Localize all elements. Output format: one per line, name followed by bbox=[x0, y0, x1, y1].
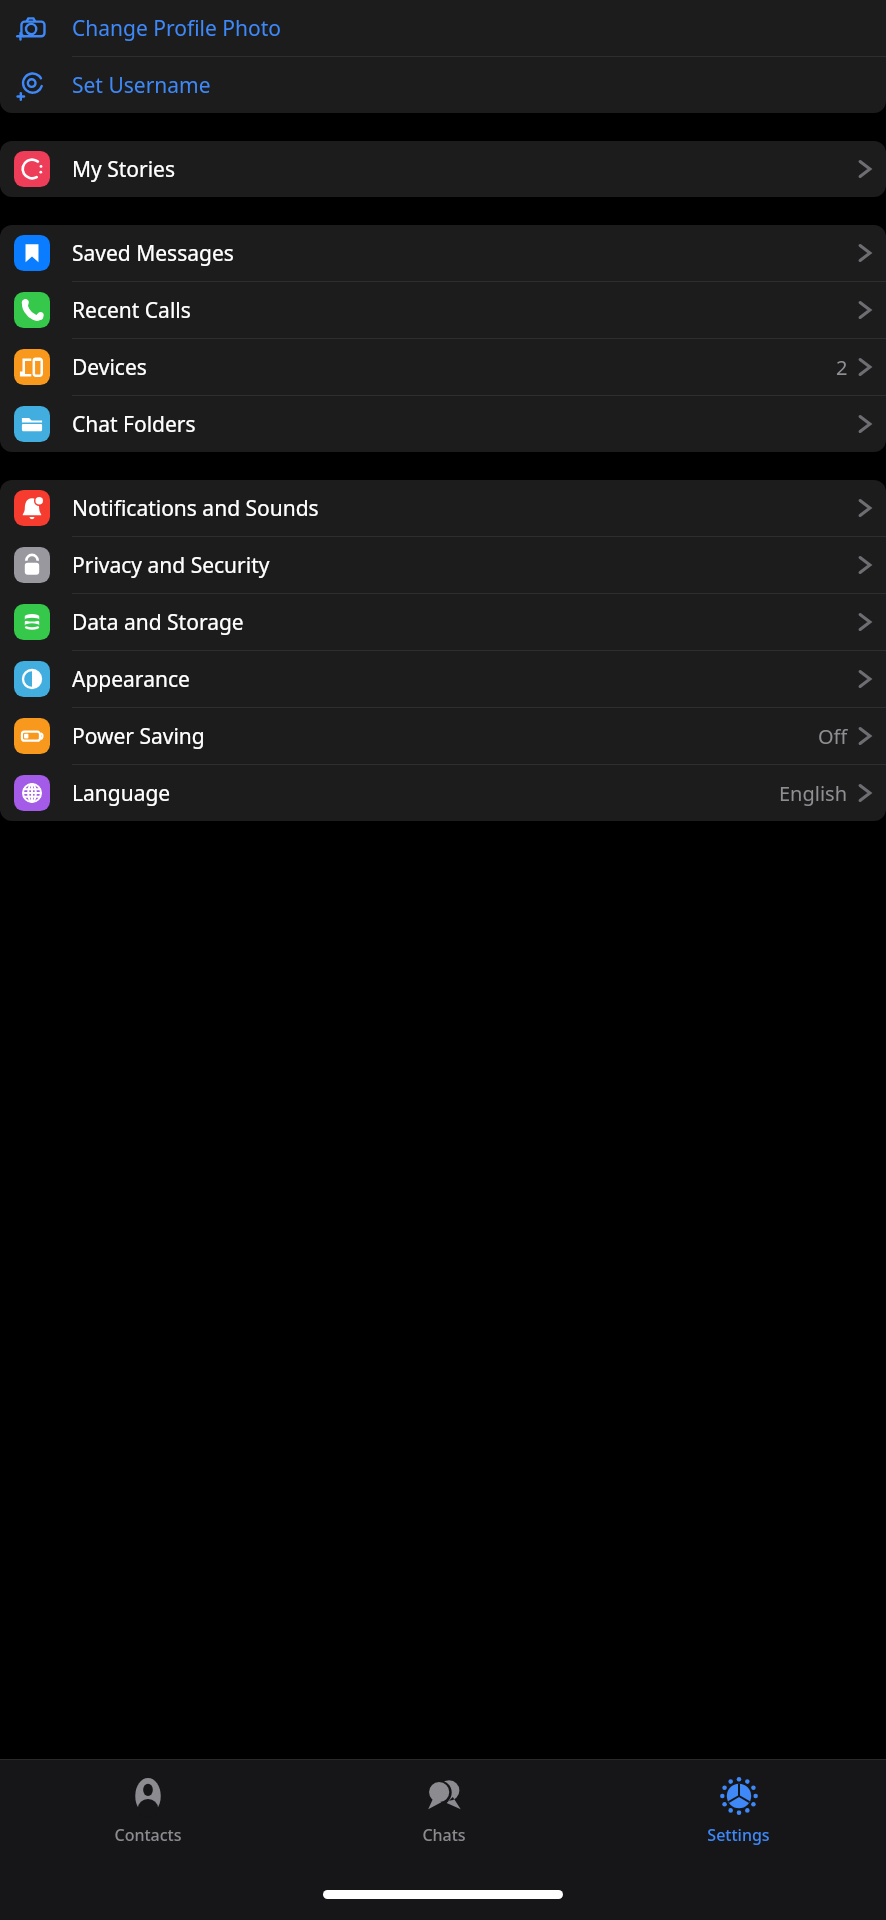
staticText: My Stories bbox=[72, 155, 176, 184]
button[interactable]: Appearance bbox=[0, 651, 886, 707]
staticText: Contacts bbox=[114, 1824, 182, 1846]
staticText: Recent Calls bbox=[72, 296, 191, 325]
button[interactable]: Chat Folders bbox=[0, 396, 886, 452]
button[interactable]: Data and Storage bbox=[0, 594, 886, 650]
staticText: 2 bbox=[836, 354, 848, 381]
staticText: Power Saving bbox=[72, 722, 205, 751]
other: Chats bbox=[422, 1774, 466, 1818]
staticText: Set Username bbox=[72, 71, 211, 100]
other: Settings bbox=[717, 1774, 761, 1818]
staticText: Change Profile Photo bbox=[72, 14, 281, 43]
button[interactable]: Set Username bbox=[0, 57, 886, 113]
staticText: Chat Folders bbox=[72, 410, 196, 439]
button[interactable]: Notifications and Sounds bbox=[0, 480, 886, 536]
button[interactable]: Devices bbox=[0, 339, 886, 395]
staticText: Privacy and Security bbox=[72, 551, 270, 580]
staticText: English bbox=[779, 780, 848, 807]
staticText: Settings bbox=[707, 1824, 770, 1846]
staticText: Appearance bbox=[72, 665, 190, 694]
button[interactable]: Saved Messages bbox=[0, 225, 886, 281]
staticText: Data and Storage bbox=[72, 608, 244, 637]
staticText: Notifications and Sounds bbox=[72, 494, 319, 523]
button[interactable]: Change Profile Photo bbox=[0, 0, 886, 56]
staticText: Off bbox=[818, 723, 848, 750]
other: Contacts bbox=[126, 1774, 170, 1818]
staticText: Devices bbox=[72, 353, 147, 382]
button[interactable]: Privacy and Security bbox=[0, 537, 886, 593]
button[interactable]: Chats bbox=[296, 1760, 591, 1880]
button[interactable]: Recent Calls bbox=[0, 282, 886, 338]
button[interactable]: My Stories bbox=[0, 141, 886, 197]
button[interactable]: Settings bbox=[591, 1760, 886, 1880]
staticText: Chats bbox=[422, 1824, 466, 1846]
button[interactable]: Power Saving bbox=[0, 708, 886, 764]
staticText: Saved Messages bbox=[72, 239, 234, 268]
button[interactable]: Language bbox=[0, 765, 886, 821]
button[interactable]: Contacts bbox=[0, 1760, 296, 1880]
staticText: Language bbox=[72, 779, 171, 808]
